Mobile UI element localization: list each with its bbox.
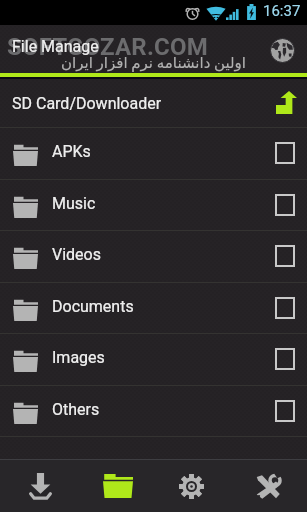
button[interactable]: Language: [268, 35, 296, 65]
button[interactable]: Videos: [0, 231, 307, 282]
button[interactable]: Documents: [0, 283, 307, 334]
staticText: Images: [52, 348, 105, 367]
button[interactable]: Select Documents: [268, 291, 302, 325]
staticText: اولین دانشنامه نرم افزار ایران: [0, 54, 307, 72]
button[interactable]: Settings: [153, 460, 230, 512]
staticText: SOFTGOZAR.COM: [7, 33, 208, 61]
staticText: APKs: [52, 142, 91, 161]
button[interactable]: SD Card/Downloader: [0, 79, 307, 127]
staticText: SD Card/Downloader: [12, 94, 162, 113]
staticText: File Manage: [12, 37, 99, 56]
button[interactable]: Select APKs: [268, 136, 302, 170]
staticText: Music: [52, 194, 96, 213]
button[interactable]: Downloads: [0, 460, 76, 512]
button[interactable]: Tools: [230, 460, 307, 512]
button[interactable]: Up one level: [272, 87, 300, 117]
staticText: Others: [52, 400, 100, 419]
button[interactable]: Files: [76, 460, 153, 512]
button[interactable]: Images: [0, 334, 307, 385]
staticText: 16:37: [263, 2, 301, 20]
button[interactable]: Select Music: [268, 188, 302, 222]
staticText: Videos: [52, 245, 101, 264]
button[interactable]: APKs: [0, 128, 307, 179]
button[interactable]: Select Images: [268, 342, 302, 376]
button[interactable]: Select Videos: [268, 239, 302, 273]
staticText: Documents: [52, 297, 134, 316]
button[interactable]: Music: [0, 180, 307, 231]
button[interactable]: Others: [0, 386, 307, 437]
button[interactable]: Select Others: [268, 394, 302, 428]
